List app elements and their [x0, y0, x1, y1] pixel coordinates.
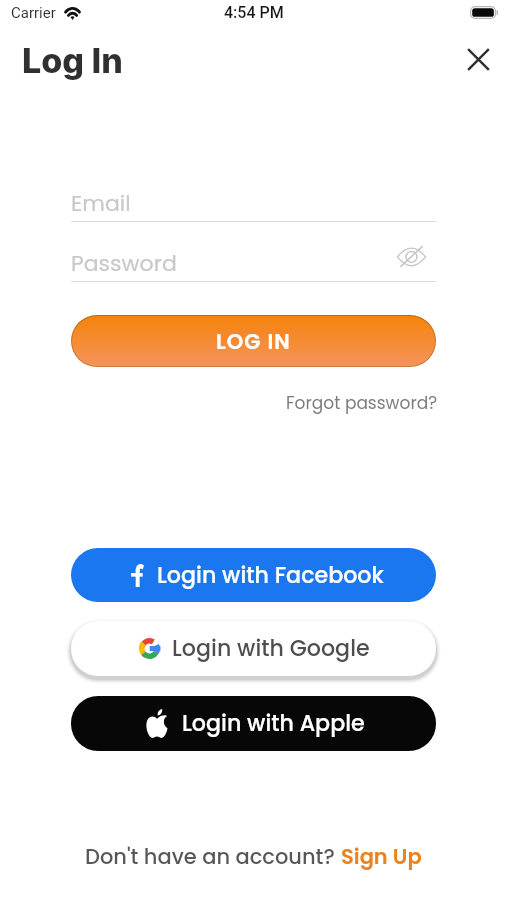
staticText: Login with Apple [182, 708, 365, 739]
staticText: Email [71, 188, 131, 219]
button[interactable]: Log In [22, 40, 123, 81]
staticText: Log In [22, 40, 123, 81]
button[interactable]: LOG IN [72, 316, 435, 366]
staticText: 4:54 PM [224, 3, 284, 22]
staticText: Forgot password? [286, 391, 438, 415]
button[interactable]: Forgot password? [286, 391, 438, 415]
staticText: Password [71, 248, 177, 279]
button[interactable]: Password [71, 244, 436, 282]
button[interactable]: Login with Apple [71, 696, 436, 751]
button[interactable]: Sign Up [341, 842, 422, 871]
button[interactable]: Email [71, 184, 436, 222]
staticText: Carrier [11, 4, 56, 22]
staticText: Login with Google [172, 633, 370, 664]
staticText: Don't have an account? [85, 842, 341, 871]
button[interactable]: Close [460, 41, 496, 77]
staticText: Sign Up [341, 842, 422, 871]
button[interactable]: Login with Facebook [71, 548, 436, 602]
staticText: Login with Facebook [157, 560, 384, 591]
button[interactable]: Show password [390, 239, 433, 275]
staticText: LOG IN [216, 327, 291, 356]
button[interactable]: Login with Google [71, 621, 436, 676]
